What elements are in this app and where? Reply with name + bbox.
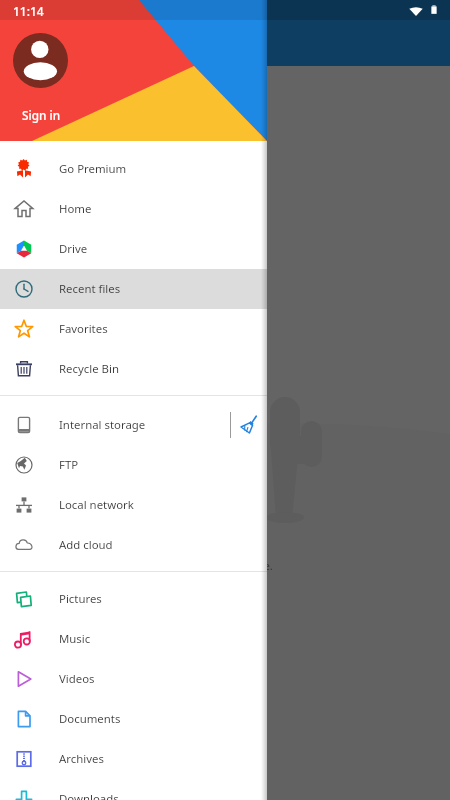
button[interactable]: Account xyxy=(13,33,68,88)
button[interactable]: Documents xyxy=(0,699,267,739)
button[interactable]: Downloads xyxy=(0,779,267,800)
staticText: Drive xyxy=(59,241,88,257)
button[interactable]: Sign in xyxy=(22,107,61,123)
button[interactable]: Videos xyxy=(0,659,267,699)
button[interactable]: Archives xyxy=(0,739,267,779)
button[interactable]: Local network xyxy=(0,485,267,525)
staticText: Videos xyxy=(59,671,95,687)
button[interactable]: Add cloud xyxy=(0,525,267,565)
button[interactable]: Pictures xyxy=(0,579,267,619)
button[interactable]: FTP xyxy=(0,445,267,485)
staticText: Pictures xyxy=(59,591,102,607)
staticText: Documents xyxy=(59,711,121,727)
staticText: FTP xyxy=(59,457,79,473)
staticText: Music xyxy=(59,631,91,647)
staticText: Archives xyxy=(59,751,104,767)
staticText: Downloads xyxy=(59,791,119,800)
button[interactable]: Home xyxy=(0,189,267,229)
staticText: Home xyxy=(59,201,92,217)
staticText: Recycle Bin xyxy=(59,361,119,377)
button[interactable]: Clean xyxy=(231,405,267,445)
button[interactable]: Internal storage xyxy=(0,405,267,445)
button[interactable]: Music xyxy=(0,619,267,659)
button[interactable]: Favorites xyxy=(0,309,267,349)
staticText: Local network xyxy=(59,497,134,513)
staticText: 11:14 xyxy=(13,3,44,19)
button[interactable]: Recent files xyxy=(0,269,267,309)
button[interactable]: Go Premium xyxy=(0,149,267,189)
staticText: Internal storage xyxy=(59,417,146,433)
button[interactable]: Recycle Bin xyxy=(0,349,267,389)
staticText: Add cloud xyxy=(59,537,113,553)
staticText: Recent files xyxy=(59,281,121,297)
button[interactable]: Drive xyxy=(0,229,267,269)
staticText: There are no files here. xyxy=(150,558,273,574)
staticText: Go Premium xyxy=(59,161,127,177)
staticText: Favorites xyxy=(59,321,108,337)
